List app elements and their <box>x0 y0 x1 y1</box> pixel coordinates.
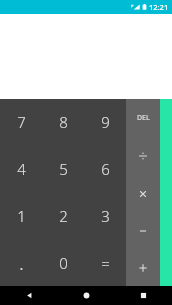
staticText: 3 <box>101 206 110 226</box>
button[interactable]: Back <box>0 286 58 305</box>
button[interactable]: Minus <box>126 212 160 249</box>
staticText: 6 <box>101 159 110 179</box>
staticText: 1 <box>17 206 26 226</box>
button[interactable]: 6 <box>84 145 126 192</box>
button[interactable]: Multiply <box>126 175 160 212</box>
staticText: 2 <box>59 206 68 226</box>
staticText: DEL <box>137 113 150 123</box>
staticText: = <box>101 253 110 273</box>
button[interactable]: 0 <box>42 239 84 286</box>
staticText: 7 <box>17 112 26 132</box>
button[interactable]: Divide <box>126 137 160 175</box>
staticText: 4 <box>17 159 26 179</box>
button[interactable]: 2 <box>42 192 84 239</box>
staticText: . <box>19 249 24 276</box>
button[interactable]: 4 <box>0 145 42 192</box>
button[interactable]: 5 <box>42 145 84 192</box>
staticText: 8 <box>59 112 68 132</box>
staticText: 5 <box>59 159 68 179</box>
button[interactable]: Recent apps <box>115 286 172 305</box>
button[interactable]: 1 <box>0 192 42 239</box>
staticText: 0 <box>59 253 68 273</box>
button[interactable]: . <box>0 239 42 286</box>
button[interactable]: 7 <box>0 99 42 145</box>
button[interactable]: 3 <box>84 192 126 239</box>
staticText: 9 <box>101 112 110 132</box>
button[interactable]: Plus <box>126 249 160 286</box>
button[interactable]: 9 <box>84 99 126 145</box>
button[interactable]: Home <box>58 286 115 305</box>
button[interactable]: DEL <box>126 99 160 137</box>
staticText: 12:21 <box>149 2 169 12</box>
button[interactable]: 8 <box>42 99 84 145</box>
button[interactable]: = <box>84 239 126 286</box>
